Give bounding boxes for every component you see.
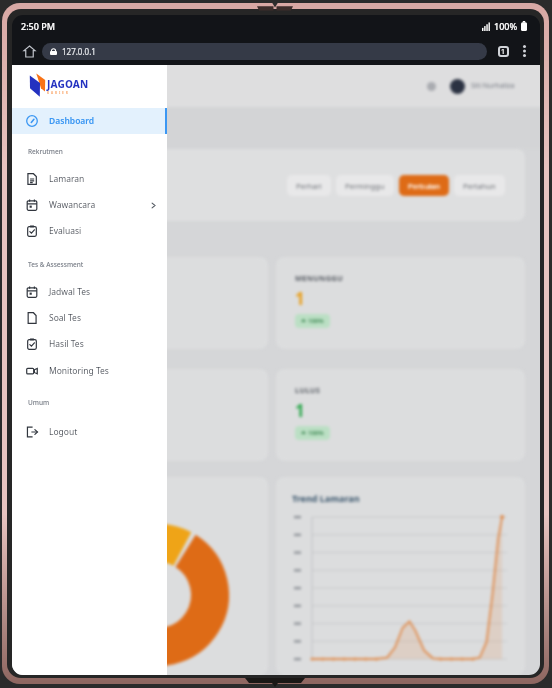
button[interactable]: MENUNGGU [276, 257, 525, 349]
staticText: Rekrutmen [28, 147, 63, 156]
button[interactable]: Monitoring Tes [12, 357, 167, 384]
staticText: Lamaran [49, 173, 85, 185]
staticText: Siti Nurhaliza [471, 81, 515, 91]
staticText: Soal Tes [49, 312, 81, 324]
staticText: JAGOAN [47, 77, 89, 91]
staticText: Pertahun [463, 181, 496, 191]
button[interactable]: Wawancara [12, 192, 167, 218]
button[interactable]: TOTAL [20, 257, 268, 349]
staticText: MENUNGGU [295, 273, 344, 283]
button[interactable]: Perhari [287, 175, 331, 196]
staticText: 100% [52, 429, 68, 437]
staticText: 100% [52, 317, 68, 325]
staticText: Evaluasi [49, 225, 82, 237]
staticText: Umum [28, 398, 50, 407]
staticText: 100% [308, 317, 324, 325]
button[interactable]: 127.0.0.1 [42, 43, 487, 60]
staticText: Perminggu [345, 181, 385, 191]
button[interactable]: Tabs [495, 43, 511, 59]
staticText: 2:50 PM [21, 20, 55, 32]
staticText: Dashboard [49, 115, 95, 127]
staticText: 1 [295, 287, 305, 310]
staticText: Tes & Assessment [28, 260, 84, 269]
staticText: 100% [308, 429, 324, 437]
button[interactable]: More options [516, 43, 532, 59]
button[interactable]: Soal Tes [12, 305, 167, 331]
button[interactable]: Jadwal Tes [12, 279, 167, 305]
staticText: 100% [494, 20, 518, 32]
button[interactable]: Perbulan [399, 175, 449, 196]
staticText: Dashboard > HR [20, 123, 78, 133]
button[interactable]: DITERIMA [20, 369, 268, 461]
staticText: 1 [295, 399, 305, 422]
button[interactable]: Perminggu [336, 175, 394, 196]
staticText: Hasil Tes [49, 338, 84, 350]
staticText: Logout [49, 426, 78, 438]
button[interactable]: Logout [12, 419, 167, 445]
staticText: Wawancara [49, 199, 96, 211]
button[interactable]: Evaluasi [12, 218, 167, 244]
staticText: 5 [39, 287, 49, 310]
staticText: Monitoring Tes [49, 365, 109, 377]
staticText: LULUS [295, 385, 321, 395]
staticText: 2 [39, 399, 49, 422]
button[interactable]: Dashboard [12, 108, 167, 134]
button[interactable]: Home [20, 42, 38, 60]
staticText: Perbulan [408, 181, 440, 191]
staticText: Trend Lamaran [292, 492, 360, 504]
staticText: Perhari [296, 181, 322, 191]
button[interactable]: LULUS [276, 369, 525, 461]
staticText: Jadwal Tes [49, 286, 91, 298]
button[interactable]: Hasil Tes [12, 331, 167, 357]
staticText: 127.0.0.1 [62, 46, 96, 57]
staticText: K A R I E R [47, 91, 69, 95]
staticText: 1 [501, 47, 506, 57]
button[interactable]: Lamaran [12, 166, 167, 192]
button[interactable]: Pertahun [454, 175, 505, 196]
